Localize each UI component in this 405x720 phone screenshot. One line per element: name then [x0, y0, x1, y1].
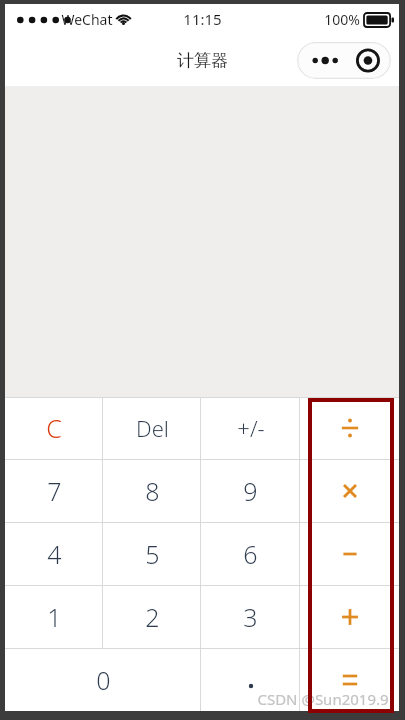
staticText: 5 — [145, 537, 160, 571]
staticText: Del — [136, 413, 169, 443]
staticText: WeChat — [61, 10, 113, 29]
button[interactable]: Mini program menu: more and close — [297, 42, 391, 79]
staticText: 0 — [96, 663, 111, 697]
staticText: 11:15 — [183, 9, 222, 29]
staticText: 6 — [243, 537, 258, 571]
button[interactable]: 0 — [5, 648, 201, 711]
button[interactable] — [300, 397, 399, 459]
button[interactable]: 1 — [5, 585, 103, 648]
button[interactable]: 7 — [5, 459, 103, 522]
staticText: 2 — [145, 600, 160, 634]
button[interactable] — [300, 459, 399, 522]
button[interactable] — [300, 585, 399, 648]
staticText: 4 — [47, 537, 62, 571]
button[interactable] — [201, 648, 300, 711]
staticText: 7 — [47, 474, 62, 508]
staticText: 9 — [243, 474, 258, 508]
staticText: +/- — [237, 413, 265, 443]
button[interactable]: 3 — [201, 585, 300, 648]
button[interactable] — [300, 648, 399, 711]
button[interactable]: 2 — [103, 585, 201, 648]
staticText: C — [46, 411, 62, 445]
button[interactable]: 5 — [103, 522, 201, 585]
button[interactable]: 6 — [201, 522, 300, 585]
button[interactable]: +/- — [201, 397, 300, 459]
staticText: 1 — [47, 600, 62, 634]
button[interactable]: C — [5, 397, 103, 459]
staticText: 计算器 — [177, 50, 228, 71]
button[interactable]: 4 — [5, 522, 103, 585]
button[interactable]: Del — [103, 397, 201, 459]
staticText: 100% — [324, 10, 360, 29]
button[interactable] — [300, 522, 399, 585]
staticText: 8 — [145, 474, 160, 508]
button[interactable]: 9 — [201, 459, 300, 522]
button[interactable]: 8 — [103, 459, 201, 522]
staticText: 3 — [243, 600, 258, 634]
staticText: CSDN @Sun2019.9 — [257, 689, 389, 709]
